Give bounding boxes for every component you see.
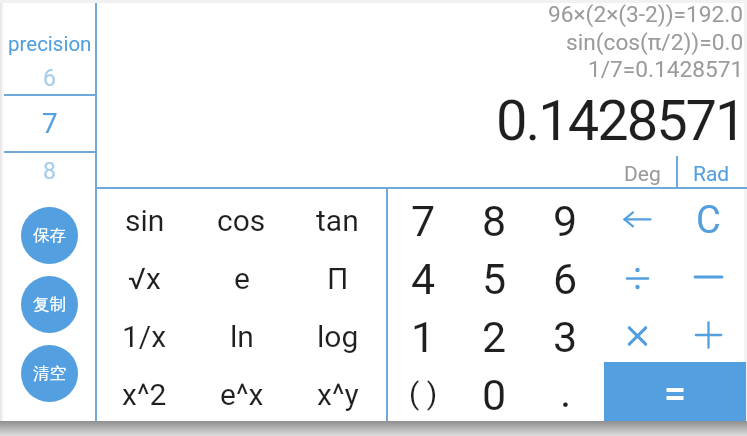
staticText: x^2 <box>122 377 167 412</box>
staticText: 3 <box>553 312 578 362</box>
staticText: e <box>234 261 250 296</box>
staticText: tan <box>316 203 359 238</box>
staticText: x^y <box>317 377 359 412</box>
button[interactable]: √x <box>96 249 193 307</box>
staticText: 8 <box>43 158 56 185</box>
staticText: 6 <box>553 254 578 304</box>
staticText: sin <box>125 203 165 238</box>
staticText: ln <box>230 319 254 354</box>
staticText: 7 <box>411 196 436 246</box>
staticText: Rad <box>693 162 730 187</box>
button[interactable]: 9 <box>530 192 601 250</box>
button[interactable]: C <box>673 191 744 249</box>
staticText: 9 <box>553 196 578 246</box>
staticText: 6 <box>43 65 56 92</box>
staticText: 复制 <box>33 294 66 315</box>
button[interactable] <box>602 189 673 247</box>
button[interactable]: e <box>193 249 290 307</box>
button[interactable]: Rad <box>682 160 740 188</box>
button[interactable]: 2 <box>459 308 530 366</box>
button[interactable]: 6 <box>530 250 601 308</box>
staticText: 4 <box>411 254 436 304</box>
staticText: 保存 <box>33 225 66 246</box>
staticText: 1/7=0.1428571 <box>588 56 744 82</box>
button[interactable]: 5 <box>459 250 530 308</box>
button[interactable]: 清空 <box>21 345 78 402</box>
staticText: 清空 <box>33 363 66 384</box>
button[interactable]: 7 <box>388 192 459 250</box>
button[interactable]: 3 <box>530 308 601 366</box>
staticText: C <box>696 198 721 243</box>
staticText: Deg <box>624 162 661 187</box>
staticText: 7 <box>42 107 58 139</box>
staticText: Π <box>327 261 349 296</box>
button[interactable] <box>604 362 746 421</box>
button[interactable]: tan <box>289 191 386 249</box>
staticText: √x <box>128 261 161 296</box>
button[interactable]: 8 <box>4 156 95 187</box>
staticText: 0 <box>482 370 507 420</box>
button[interactable]: 复制 <box>21 276 78 333</box>
staticText: 2 <box>482 312 507 362</box>
staticText: 5 <box>482 254 507 304</box>
staticText: . <box>560 367 572 417</box>
button[interactable]: 4 <box>388 250 459 308</box>
staticText: cos <box>217 203 266 238</box>
staticText: e^x <box>220 377 264 412</box>
staticText: precision <box>8 32 92 56</box>
staticText: log <box>317 319 359 354</box>
button[interactable]: x^y <box>289 365 386 423</box>
staticText: 96×(2×(3-2))=192.0 <box>548 1 744 27</box>
button[interactable]: e^x <box>193 365 290 423</box>
button[interactable]: Π <box>289 249 386 307</box>
button[interactable] <box>602 305 673 363</box>
button[interactable]: 8 <box>459 192 530 250</box>
button[interactable]: 0 <box>459 366 530 424</box>
staticText: 1 <box>411 312 436 362</box>
button[interactable]: 保存 <box>21 207 78 264</box>
button[interactable] <box>604 362 746 421</box>
button[interactable] <box>602 247 673 305</box>
staticText: ( ) <box>409 376 438 411</box>
staticText: 8 <box>482 196 507 246</box>
button[interactable]: sin <box>96 191 193 249</box>
button[interactable]: 1 <box>388 308 459 366</box>
button[interactable]: 7 <box>4 107 95 139</box>
button[interactable]: cos <box>193 191 290 249</box>
button[interactable]: . <box>530 363 601 421</box>
staticText: 1/x <box>122 319 167 354</box>
button[interactable]: 6 <box>4 63 95 94</box>
button[interactable]: ln <box>193 307 290 365</box>
staticText: sin(cos(π/2))=0.0 <box>566 29 744 55</box>
button[interactable] <box>673 247 744 305</box>
button[interactable]: log <box>289 307 386 365</box>
button[interactable]: x^2 <box>96 365 193 423</box>
button[interactable] <box>673 305 744 363</box>
staticText: 0.1428571 <box>496 88 745 154</box>
button[interactable]: Deg <box>613 160 671 188</box>
button[interactable]: 1/x <box>96 307 193 365</box>
button[interactable]: ( ) <box>388 364 459 422</box>
